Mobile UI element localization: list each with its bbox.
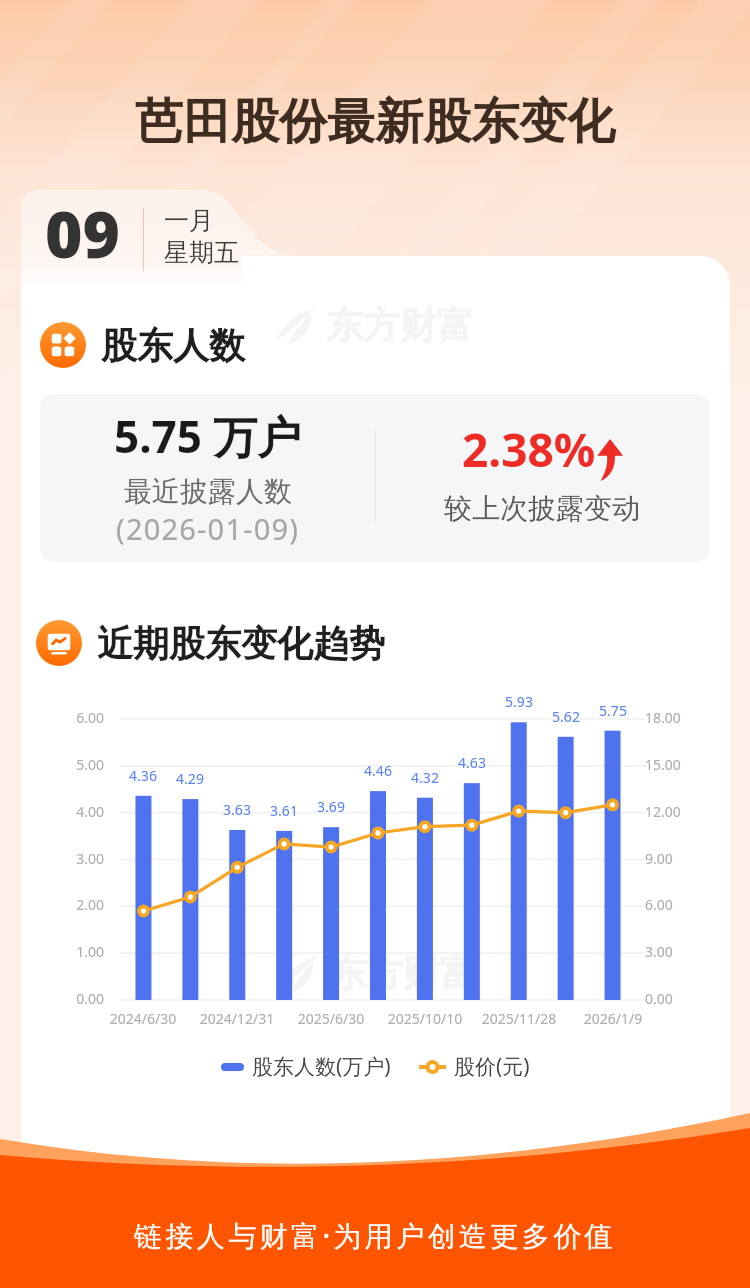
staticText: 4.32 (395, 768, 455, 787)
staticText: 15.00 (645, 755, 705, 774)
staticText: 3.69 (301, 797, 361, 816)
staticText: 芭田股份最新股东变化 (135, 92, 615, 152)
staticText: 3.63 (207, 800, 267, 819)
staticText: 链接人与财富·为用户创造更多价值 (134, 1216, 617, 1254)
staticText: (2026-01-09) (116, 509, 300, 548)
staticText: 5.75 万户 (114, 406, 302, 466)
staticText: 5.75 (583, 701, 643, 720)
button[interactable]: 股东人数 (40, 322, 245, 368)
staticText: 5.93 (489, 692, 549, 711)
staticText: 一月 (164, 205, 214, 236)
button[interactable]: 股东人数(万户) (221, 1052, 391, 1081)
staticText: 近期股东变化趋势 (97, 621, 385, 666)
staticText: 09 (45, 190, 121, 277)
button[interactable]: 股价(元) (419, 1052, 530, 1081)
staticText: 2024/12/31 (182, 1009, 292, 1028)
staticText: 18.00 (645, 708, 705, 727)
staticText: 3.00 (44, 849, 104, 868)
staticText: 9.00 (645, 849, 705, 868)
staticText: 1.00 (44, 942, 104, 961)
staticText: 2.38% (462, 418, 596, 481)
staticText: 2026/1/9 (558, 1009, 668, 1028)
staticText: 2025/11/28 (464, 1009, 574, 1028)
staticText: 4.00 (44, 802, 104, 821)
staticText: 2025/10/10 (370, 1009, 480, 1028)
staticText: 最近披露人数 (124, 474, 292, 509)
staticText: 4.36 (113, 766, 173, 785)
staticText: 股东人数(万户) (252, 1052, 391, 1081)
staticText: 4.46 (348, 761, 408, 780)
button[interactable]: 股东人数 5.75 万户, 较上次披露变动 2.38% (40, 394, 710, 562)
staticText: 4.29 (160, 769, 220, 788)
staticText: 3.00 (645, 942, 705, 961)
button[interactable]: 09 一月 星期五 (21, 190, 242, 283)
staticText: 星期五 (164, 237, 239, 268)
staticText: 2024/6/30 (88, 1009, 198, 1028)
other: 股东人数 (40, 322, 86, 368)
staticText: 0.00 (645, 989, 705, 1008)
staticText: 6.00 (645, 895, 705, 914)
staticText: 5.00 (44, 755, 104, 774)
staticText: 股东人数 (101, 323, 245, 368)
staticText: 东方财富 (329, 950, 477, 997)
staticText: 0.00 (44, 989, 104, 1008)
staticText: 2025/6/30 (276, 1009, 386, 1028)
button[interactable]: 近期股东变化趋势 (36, 620, 385, 666)
staticText: 3.61 (254, 801, 314, 820)
other: 近期股东变化趋势 (36, 620, 82, 666)
staticText: 股价(元) (454, 1052, 530, 1081)
staticText: 12.00 (645, 802, 705, 821)
staticText: 4.63 (442, 753, 502, 772)
staticText: 6.00 (44, 708, 104, 727)
staticText: 东方财富 (326, 302, 474, 349)
staticText: 5.62 (536, 707, 596, 726)
staticText: 2.00 (44, 895, 104, 914)
staticText: 较上次披露变动 (444, 491, 640, 526)
